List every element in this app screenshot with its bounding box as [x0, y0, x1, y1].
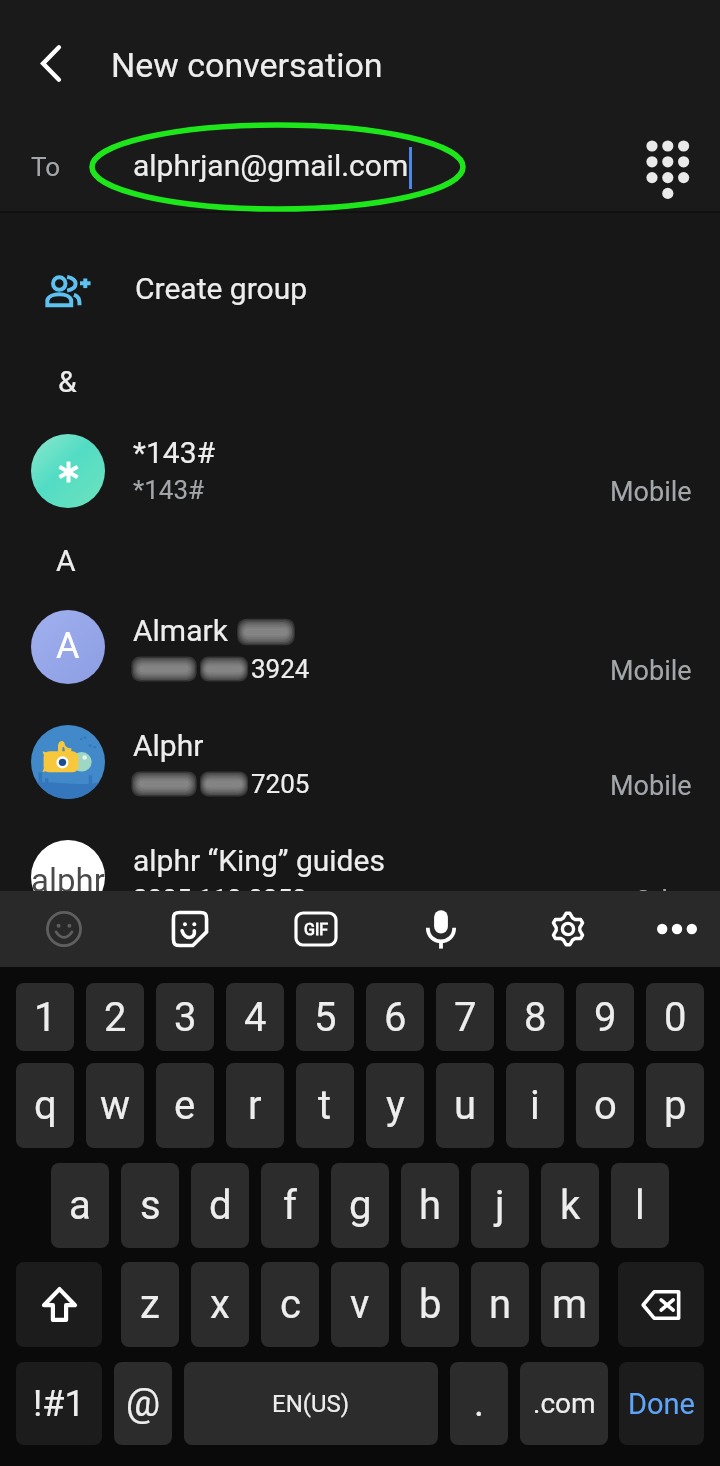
- button[interactable]: A: [0, 594, 720, 706]
- button[interactable]: Stickers: [152, 891, 228, 967]
- staticText: 8: [524, 994, 547, 1041]
- button[interactable]: Back: [22, 35, 79, 92]
- button[interactable]: g: [331, 1163, 389, 1248]
- button[interactable]: 0: [646, 983, 704, 1051]
- button[interactable]: 4: [226, 983, 284, 1051]
- button[interactable]: j: [471, 1163, 529, 1248]
- button[interactable]: *143#: [0, 415, 720, 527]
- button[interactable]: t: [296, 1063, 354, 1148]
- button[interactable]: alphrjan@gmail.com: [110, 124, 600, 210]
- staticText: .: [474, 1381, 485, 1426]
- button[interactable]: .com: [520, 1362, 608, 1445]
- button[interactable]: 7: [436, 983, 494, 1051]
- button[interactable]: r: [226, 1063, 284, 1148]
- staticText: Alphr: [133, 728, 204, 763]
- staticText: q: [34, 1082, 57, 1129]
- staticText: 6: [384, 994, 407, 1041]
- staticText: 2005 110 0050: [133, 884, 307, 914]
- staticText: i: [530, 1082, 540, 1129]
- button[interactable]: o: [576, 1063, 634, 1148]
- staticText: o: [594, 1082, 617, 1129]
- staticText: c: [280, 1281, 301, 1328]
- staticText: Mobile: [610, 655, 692, 687]
- button[interactable]: v: [331, 1262, 389, 1347]
- button[interactable]: 5: [296, 983, 354, 1051]
- button[interactable]: k: [541, 1163, 599, 1248]
- staticText: alphr: [31, 861, 105, 900]
- button[interactable]: n: [471, 1262, 529, 1347]
- staticText: l: [635, 1182, 645, 1229]
- button[interactable]: EN(US): [184, 1362, 438, 1445]
- staticText: 1: [34, 994, 57, 1041]
- staticText: @: [126, 1381, 161, 1426]
- button[interactable]: More options: [639, 891, 715, 967]
- staticText: r: [248, 1082, 262, 1129]
- staticText: Mobile: [610, 770, 692, 802]
- staticText: a: [69, 1182, 91, 1229]
- button[interactable]: Create group: [0, 236, 720, 344]
- staticText: *143#: [133, 435, 215, 470]
- button[interactable]: Shift: [16, 1262, 102, 1347]
- staticText: !#1: [33, 1383, 85, 1425]
- staticText: 7205: [251, 769, 310, 799]
- button[interactable]: l: [611, 1163, 669, 1248]
- staticText: 3: [174, 994, 197, 1041]
- staticText: *143#: [133, 475, 205, 505]
- staticText: g: [349, 1182, 372, 1229]
- button[interactable]: Backspace: [618, 1262, 704, 1347]
- staticText: z: [140, 1281, 160, 1328]
- staticText: 7: [454, 994, 477, 1041]
- staticText: t: [318, 1082, 332, 1129]
- button[interactable]: Dialpad: [620, 120, 716, 216]
- button[interactable]: p: [646, 1063, 704, 1148]
- staticText: A: [56, 625, 80, 667]
- button[interactable]: .: [450, 1362, 508, 1445]
- button[interactable]: Keyboard settings: [530, 891, 606, 967]
- staticText: 4: [244, 994, 267, 1041]
- button[interactable]: m: [541, 1262, 599, 1347]
- button[interactable]: y: [366, 1063, 424, 1148]
- button[interactable]: @: [114, 1362, 172, 1445]
- button[interactable]: b: [401, 1262, 459, 1347]
- staticText: Almark: [133, 613, 228, 648]
- staticText: u: [454, 1082, 477, 1129]
- staticText: e: [174, 1082, 196, 1129]
- staticText: b: [419, 1281, 442, 1328]
- button[interactable]: Done: [619, 1362, 704, 1445]
- button[interactable]: 2: [86, 983, 144, 1051]
- staticText: GIF: [304, 920, 329, 939]
- staticText: n: [489, 1281, 512, 1328]
- button[interactable]: 1: [16, 983, 74, 1051]
- button[interactable]: c: [261, 1262, 319, 1347]
- button[interactable]: e: [156, 1063, 214, 1148]
- button[interactable]: i: [506, 1063, 564, 1148]
- staticText: 3924: [251, 654, 310, 684]
- button[interactable]: 9: [576, 983, 634, 1051]
- button[interactable]: u: [436, 1063, 494, 1148]
- button[interactable]: Voice input: [403, 891, 479, 967]
- button[interactable]: w: [86, 1063, 144, 1148]
- staticText: v: [350, 1281, 370, 1328]
- button[interactable]: f: [261, 1163, 319, 1248]
- staticText: j: [495, 1182, 505, 1229]
- button[interactable]: z: [121, 1262, 179, 1347]
- button[interactable]: alphr: [0, 824, 720, 936]
- button[interactable]: !#1: [16, 1362, 102, 1445]
- button[interactable]: a: [51, 1163, 109, 1248]
- button[interactable]: h: [401, 1163, 459, 1248]
- staticText: 9: [594, 994, 617, 1041]
- staticText: f: [283, 1182, 297, 1229]
- button[interactable]: GIF: [278, 891, 354, 967]
- button[interactable]: 3: [156, 983, 214, 1051]
- button[interactable]: s: [121, 1163, 179, 1248]
- button[interactable]: Alphr: [0, 709, 720, 821]
- staticText: s: [140, 1182, 161, 1229]
- button[interactable]: Emoji: [26, 891, 102, 967]
- button[interactable]: d: [191, 1163, 249, 1248]
- staticText: alphrjan@gmail.com: [133, 148, 409, 183]
- button[interactable]: q: [16, 1063, 74, 1148]
- button[interactable]: 6: [366, 983, 424, 1051]
- button[interactable]: x: [191, 1262, 249, 1347]
- staticText: alphr “King” guides: [133, 843, 385, 878]
- button[interactable]: 8: [506, 983, 564, 1051]
